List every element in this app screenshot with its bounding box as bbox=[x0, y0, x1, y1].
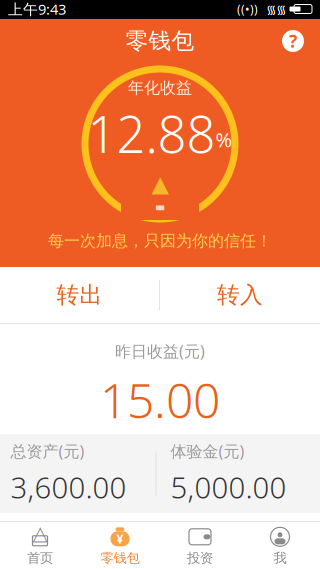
staticText: 零钱包 bbox=[125, 27, 194, 55]
staticText: % bbox=[215, 126, 232, 153]
staticText: 上午9:43 bbox=[8, 0, 66, 19]
staticText: 体验金(元) bbox=[170, 440, 244, 462]
staticText: 转出 bbox=[56, 281, 102, 309]
staticText: ▃ bbox=[156, 198, 164, 210]
staticText: 转入 bbox=[217, 281, 263, 309]
staticText: 总资产(元) bbox=[10, 440, 84, 462]
staticText: 我 bbox=[273, 550, 286, 566]
staticText: ((•)) bbox=[237, 1, 258, 17]
staticText: ▲ bbox=[151, 171, 168, 197]
staticText: △ bbox=[32, 522, 47, 545]
button[interactable]: △ bbox=[0, 522, 80, 569]
staticText: 12.88 bbox=[87, 100, 215, 167]
button[interactable]: 转出 bbox=[0, 267, 159, 323]
staticText: 首页 bbox=[27, 550, 53, 566]
button[interactable]: 我 bbox=[240, 522, 320, 569]
staticText: 5,000.00 bbox=[170, 468, 286, 507]
staticText: 3,600.00 bbox=[10, 468, 126, 507]
staticText: 年化收益 bbox=[128, 78, 192, 98]
staticText: ? bbox=[289, 29, 297, 52]
staticText: 零钱包 bbox=[100, 550, 139, 566]
button[interactable]: 转入 bbox=[160, 267, 320, 323]
staticText: ᯾᯾ bbox=[266, 1, 286, 17]
staticText: ¥ bbox=[116, 531, 123, 547]
staticText: 每一次加息，只因为你的信任！ bbox=[48, 231, 272, 251]
button[interactable]: 投资 bbox=[160, 522, 240, 569]
staticText: 投资 bbox=[187, 550, 213, 566]
button[interactable]: 帮助 bbox=[282, 30, 304, 52]
staticText: 昨日收益(元) bbox=[115, 340, 205, 362]
button[interactable]: ¥ bbox=[80, 522, 160, 569]
staticText: 15.00 bbox=[100, 368, 220, 431]
